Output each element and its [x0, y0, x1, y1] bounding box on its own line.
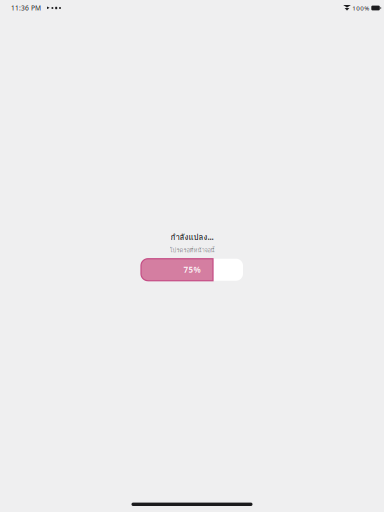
staticText: 100%	[352, 4, 369, 12]
staticText: โปรดรอที่หน้าจอนี้	[169, 246, 214, 255]
staticText: 75%	[183, 264, 200, 275]
staticText: กำลังแปลง...	[170, 231, 213, 244]
staticText: 11:36 PM	[11, 3, 41, 13]
